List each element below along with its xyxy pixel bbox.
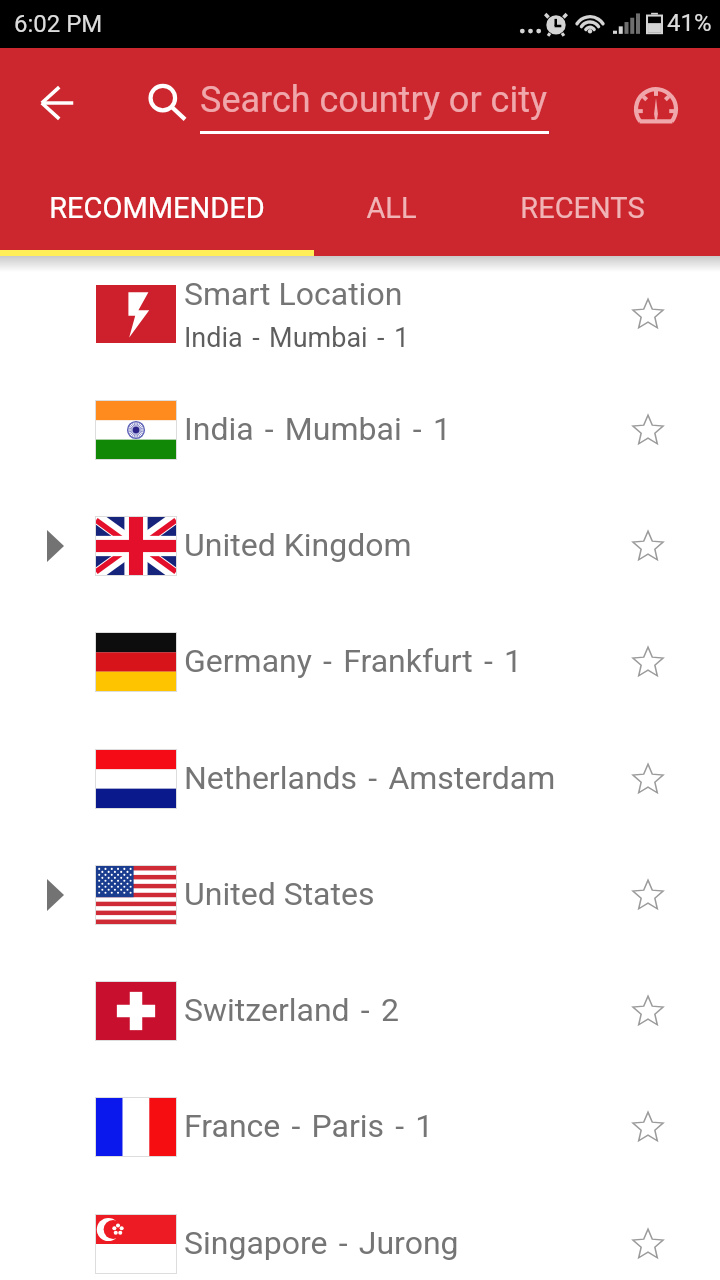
button[interactable]: Germany - Frankfurt - 1 (0, 604, 720, 720)
button[interactable]: RECENTS (457, 166, 708, 256)
button[interactable]: Singapore - Jurong (0, 1186, 720, 1280)
staticText: RECOMMENDED (49, 191, 265, 225)
staticText: ALL (366, 191, 417, 225)
button[interactable]: Add to favourites (621, 1100, 675, 1154)
button[interactable]: France - Paris - 1 (0, 1069, 720, 1185)
staticText: France - Paris - 1 (184, 1107, 434, 1145)
button[interactable]: Add to favourites (621, 287, 675, 341)
staticText: United Kingdom (184, 526, 412, 564)
staticText: RECENTS (520, 191, 645, 225)
button[interactable]: Navigate up (26, 71, 86, 131)
button[interactable]: Add to favourites (621, 403, 675, 457)
button[interactable]: Add to favourites (621, 868, 675, 922)
button[interactable]: Switzerland - 2 (0, 953, 720, 1069)
staticText: Germany - Frankfurt - 1 (184, 642, 523, 680)
button[interactable]: United Kingdom (0, 488, 720, 604)
button[interactable]: Add to favourites (621, 519, 675, 573)
button[interactable]: Add to favourites (621, 984, 675, 1038)
staticText: Switzerland - 2 (184, 991, 399, 1029)
staticText: 6:02 PM (14, 10, 103, 38)
staticText: United States (184, 875, 375, 913)
staticText: 41% (667, 9, 712, 37)
staticText: Smart Location (184, 275, 403, 313)
staticText: Singapore - Jurong (184, 1224, 459, 1262)
button[interactable]: United States (0, 837, 720, 953)
button[interactable]: Add to favourites (621, 752, 675, 806)
button[interactable]: Netherlands - Amsterdam (0, 721, 720, 837)
button[interactable]: Add to favourites (621, 1217, 675, 1271)
button[interactable]: Search country or city (140, 58, 560, 158)
staticText: India - Mumbai - 1 (184, 322, 410, 354)
button[interactable]: Speed test (623, 73, 689, 139)
button[interactable]: India - Mumbai - 1 (0, 372, 720, 488)
staticText: India - Mumbai - 1 (184, 410, 451, 448)
staticText: Search country or city (200, 79, 547, 121)
button[interactable]: Smart Location (0, 256, 720, 372)
button[interactable]: ALL (314, 166, 469, 256)
button[interactable]: Add to favourites (621, 635, 675, 689)
staticText: Netherlands - Amsterdam (184, 759, 556, 797)
button[interactable]: RECOMMENDED (0, 166, 314, 256)
